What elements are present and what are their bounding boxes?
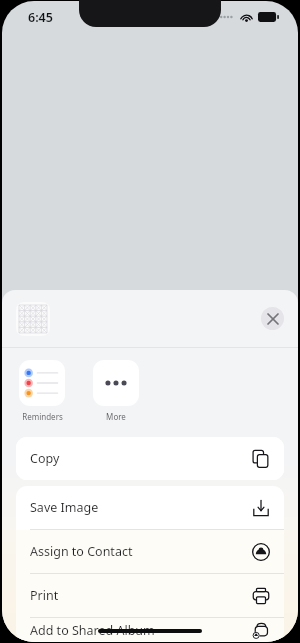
button[interactable]: Print	[16, 574, 284, 617]
button[interactable]: Image preview	[16, 302, 50, 336]
button[interactable]: Close	[261, 307, 284, 330]
button[interactable]: Save Image	[16, 486, 284, 529]
button[interactable]: Assign to Contact	[16, 530, 284, 573]
staticText: More	[106, 411, 126, 422]
staticText: Print	[30, 587, 59, 604]
button[interactable]: More	[90, 360, 142, 422]
staticText: Reminders	[22, 411, 63, 422]
staticText: Add to Shared Album	[30, 622, 155, 639]
button[interactable]: Copy	[16, 437, 284, 480]
staticText: Copy	[30, 450, 60, 467]
button[interactable]: Add to Shared Album	[16, 618, 284, 642]
staticText: Assign to Contact	[30, 543, 133, 560]
staticText: Save Image	[30, 499, 99, 516]
staticText: 6:45	[28, 9, 53, 26]
button[interactable]: Reminders	[16, 360, 68, 422]
